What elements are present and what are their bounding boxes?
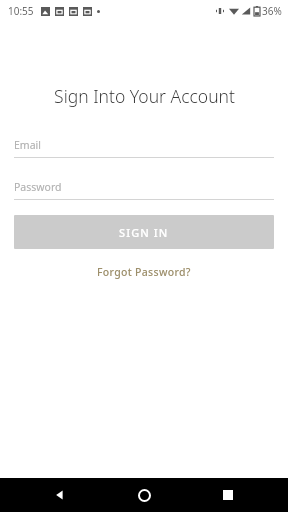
staticText: 36% — [262, 4, 282, 18]
button[interactable]: Home — [129, 480, 159, 510]
staticText: Sign Into Your Account — [54, 84, 235, 108]
staticText: Forgot Password? — [97, 265, 191, 279]
button[interactable]: Email — [14, 138, 274, 158]
staticText: SIGN IN — [119, 225, 169, 240]
button[interactable]: Recent apps — [213, 480, 243, 510]
button[interactable]: Password — [14, 180, 274, 200]
button[interactable]: SIGN IN — [14, 215, 274, 249]
button[interactable]: Back — [45, 480, 75, 510]
staticText: Email — [14, 138, 41, 152]
staticText: Password — [14, 180, 62, 194]
staticText: 10:55 — [8, 4, 34, 18]
button[interactable]: Forgot Password? — [91, 263, 197, 281]
